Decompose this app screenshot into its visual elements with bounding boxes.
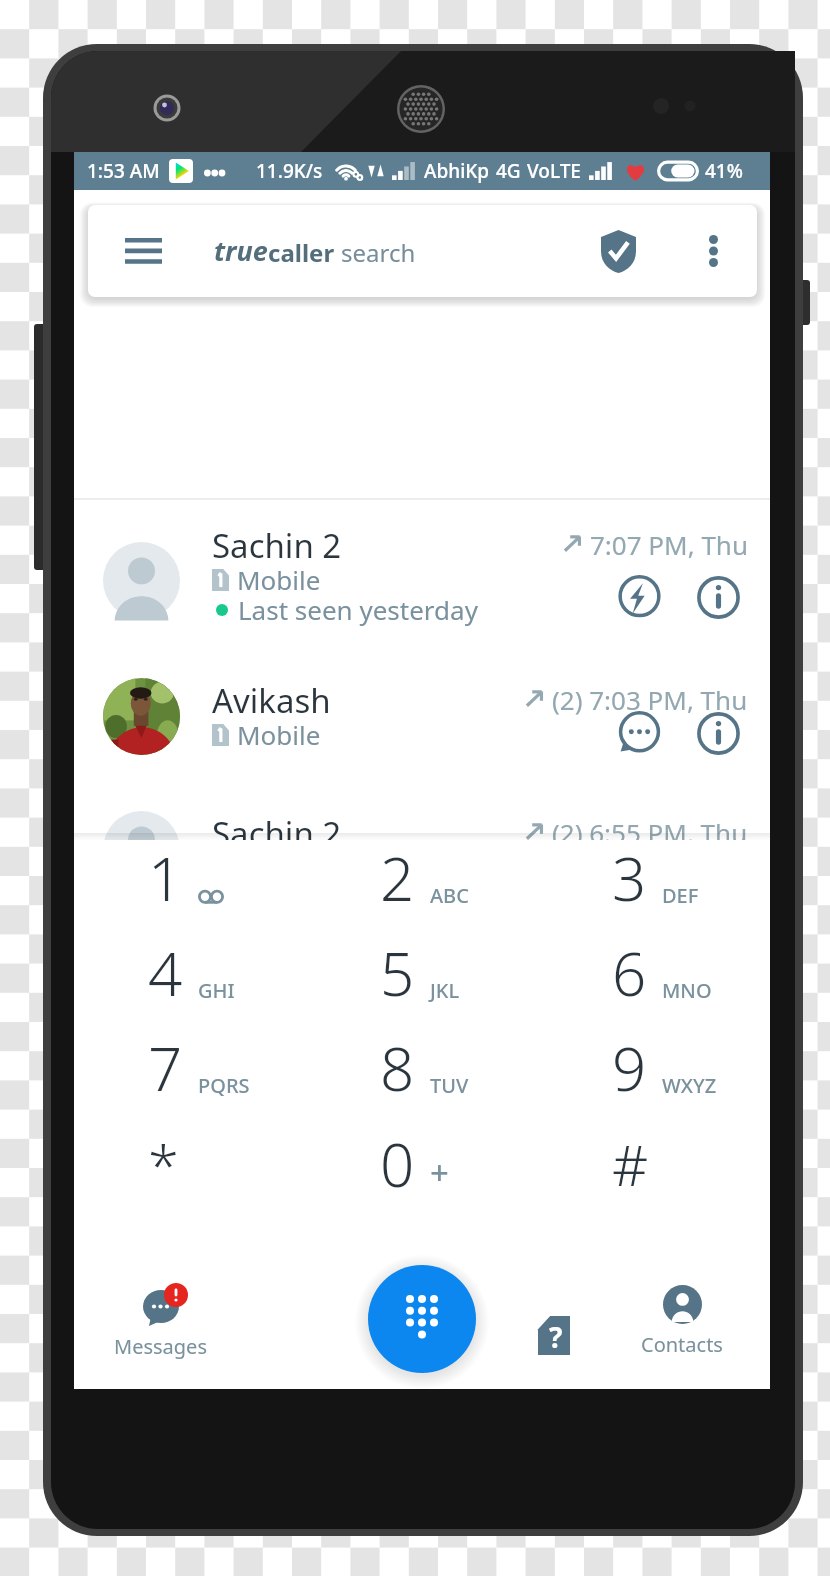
- staticText: search: [341, 236, 416, 269]
- button[interactable]: Details: [688, 836, 748, 896]
- button[interactable]: More options: [670, 205, 757, 297]
- button[interactable]: Contacts: [588, 1254, 776, 1389]
- staticText: PQRS: [198, 1072, 250, 1099]
- staticText: *: [148, 1126, 179, 1202]
- button[interactable]: 6: [538, 935, 770, 1030]
- button[interactable]: 2: [306, 840, 538, 935]
- button[interactable]: Menu: [88, 205, 214, 297]
- staticText: Mobile: [237, 562, 321, 597]
- staticText: Avikash: [212, 678, 331, 723]
- button[interactable]: 9: [538, 1030, 770, 1126]
- staticText: 9: [612, 1027, 647, 1109]
- button[interactable]: *: [74, 1126, 306, 1222]
- staticText: DEF: [662, 882, 699, 909]
- staticText: ?: [549, 1318, 563, 1356]
- staticText: 4G: [496, 158, 521, 184]
- staticText: #: [612, 1126, 649, 1202]
- staticText: 1:53 AM: [87, 158, 160, 184]
- staticText: 0: [380, 1123, 415, 1205]
- staticText: JKL: [430, 977, 460, 1004]
- button[interactable]: #: [538, 1126, 770, 1222]
- staticText: (2) 6:55 PM, Thu: [552, 815, 748, 850]
- staticText: Sachin 2: [212, 523, 342, 568]
- staticText: Contacts: [641, 1331, 723, 1358]
- staticText: 3: [612, 837, 647, 919]
- button[interactable]: 3: [538, 840, 770, 935]
- button[interactable]: Message: [609, 836, 669, 896]
- button[interactable]: 4: [74, 935, 306, 1030]
- button[interactable]: Message: [609, 703, 669, 763]
- button[interactable]: Dialpad: [368, 1265, 476, 1373]
- staticText: 4: [148, 932, 183, 1014]
- button[interactable]: Details: [688, 703, 748, 763]
- button[interactable]: Details: [688, 567, 748, 627]
- staticText: 5: [380, 932, 415, 1014]
- button[interactable]: 7: [74, 1030, 306, 1126]
- button[interactable]: Unknown contact: [514, 1295, 594, 1375]
- staticText: 7: [148, 1027, 183, 1109]
- staticText: MNO: [662, 977, 712, 1004]
- staticText: AbhiKp: [424, 158, 490, 184]
- staticText: Sachin 2: [212, 811, 342, 856]
- button[interactable]: 1: [74, 840, 306, 935]
- staticText: 1: [148, 837, 183, 919]
- staticText: 2: [380, 837, 415, 919]
- staticText: Last seen yesterday: [238, 592, 478, 627]
- staticText: TUV: [430, 1072, 469, 1099]
- button[interactable]: Avikash: [74, 661, 770, 771]
- staticText: 7:07 PM, Thu: [590, 527, 748, 562]
- staticText: (2) 7:03 PM, Thu: [552, 682, 748, 717]
- staticText: 6: [612, 932, 647, 1014]
- button[interactable]: 0: [306, 1126, 538, 1222]
- staticText: 11.9K/s: [256, 158, 323, 184]
- staticText: Mobile: [237, 717, 321, 752]
- button[interactable]: 8: [306, 1030, 538, 1126]
- staticText: +: [430, 1150, 449, 1195]
- staticText: true: [214, 232, 268, 269]
- staticText: 41%: [705, 158, 743, 184]
- button[interactable]: 5: [306, 935, 538, 1030]
- button[interactable]: Sachin 2: [74, 525, 770, 655]
- button[interactable]: Sachin 2: [74, 794, 770, 904]
- button[interactable]: Flash call: [609, 567, 669, 627]
- staticText: GHI: [198, 977, 235, 1004]
- staticText: Messages: [114, 1333, 207, 1360]
- button[interactable]: Menu: [88, 205, 757, 297]
- staticText: caller: [268, 236, 335, 269]
- button[interactable]: Messages: [66, 1254, 254, 1389]
- staticText: 8: [380, 1027, 415, 1109]
- button[interactable]: Verified: [567, 205, 670, 297]
- staticText: ABC: [430, 882, 469, 909]
- staticText: VoLTE: [527, 158, 581, 184]
- staticText: WXYZ: [662, 1072, 717, 1099]
